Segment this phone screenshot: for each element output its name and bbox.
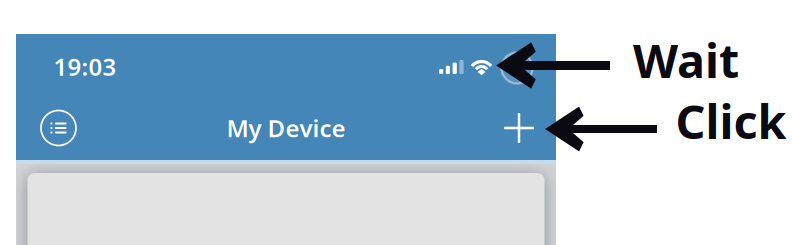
staticText: Click: [675, 90, 786, 152]
button[interactable]: Menu: [35, 105, 81, 151]
staticText: Wait: [633, 29, 739, 91]
staticText: 19:03: [53, 51, 116, 82]
staticText: My Device: [226, 112, 345, 144]
button[interactable]: Add: [496, 105, 542, 151]
